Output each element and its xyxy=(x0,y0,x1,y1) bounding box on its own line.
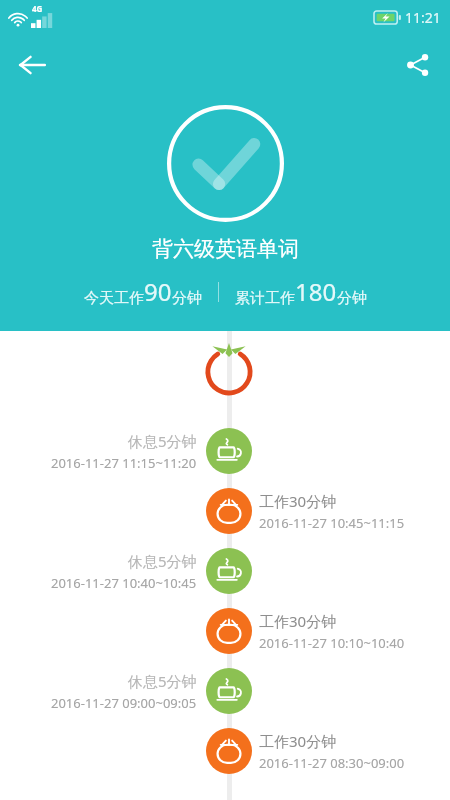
staticText: 2016-11-27 10:45~11:15 xyxy=(259,514,405,532)
staticText: 90 xyxy=(144,275,172,308)
staticText: 工作30分钟 xyxy=(259,731,337,751)
staticText: 4G xyxy=(32,3,43,14)
button[interactable]: Share xyxy=(397,44,439,86)
staticText: 2016-11-27 10:40~10:45 xyxy=(51,574,197,592)
button[interactable]: 休息5分钟 xyxy=(0,541,450,601)
button[interactable]: 休息5分钟 xyxy=(0,661,450,721)
staticText: 背六级英语单词 xyxy=(152,236,299,262)
staticText: 2016-11-27 09:00~09:05 xyxy=(51,694,197,712)
button[interactable]: Back xyxy=(9,42,55,88)
button[interactable]: 工作30分钟 xyxy=(0,481,450,541)
staticText: 11:21 xyxy=(405,8,441,27)
staticText: 今天工作 xyxy=(84,289,144,308)
staticText: 2016-11-27 08:30~09:00 xyxy=(259,754,405,772)
staticText: 累计工作 xyxy=(235,289,295,308)
staticText: 工作30分钟 xyxy=(259,491,337,511)
button[interactable]: 工作30分钟 xyxy=(0,601,450,661)
staticText: 休息5分钟 xyxy=(128,551,197,571)
staticText: 休息5分钟 xyxy=(128,431,197,451)
staticText: 休息5分钟 xyxy=(128,671,197,691)
staticText: 2016-11-27 10:10~10:40 xyxy=(259,634,405,652)
staticText: 分钟 xyxy=(172,289,202,308)
staticText: 2016-11-27 11:15~11:20 xyxy=(51,454,197,472)
staticText: 180 xyxy=(295,275,337,308)
staticText: 工作30分钟 xyxy=(259,611,337,631)
button[interactable]: 休息5分钟 xyxy=(0,421,450,481)
staticText: 分钟 xyxy=(337,289,367,308)
button[interactable]: 工作30分钟 xyxy=(0,721,450,781)
